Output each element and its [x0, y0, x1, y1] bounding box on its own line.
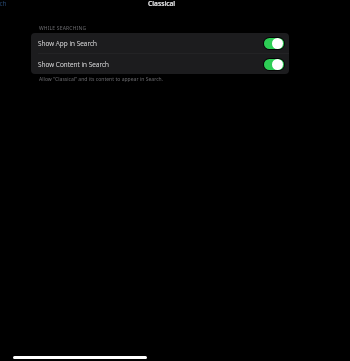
staticText: Show App in Search — [38, 39, 97, 48]
button[interactable]: Show App in Search — [31, 33, 289, 53]
button[interactable]: Show Content in Search — [263, 58, 285, 71]
staticText: Classical — [148, 0, 176, 8]
staticText: WHILE SEARCHING — [39, 25, 87, 32]
button[interactable]: Show Content in Search — [31, 54, 289, 74]
staticText: Search — [0, 0, 7, 8]
button[interactable]: Show App in Search — [263, 37, 285, 50]
staticText: Show Content in Search — [38, 60, 110, 69]
button[interactable]: Back to Search — [0, 0, 7, 8]
staticText: Allow “Classical” and its content to app… — [39, 76, 164, 83]
